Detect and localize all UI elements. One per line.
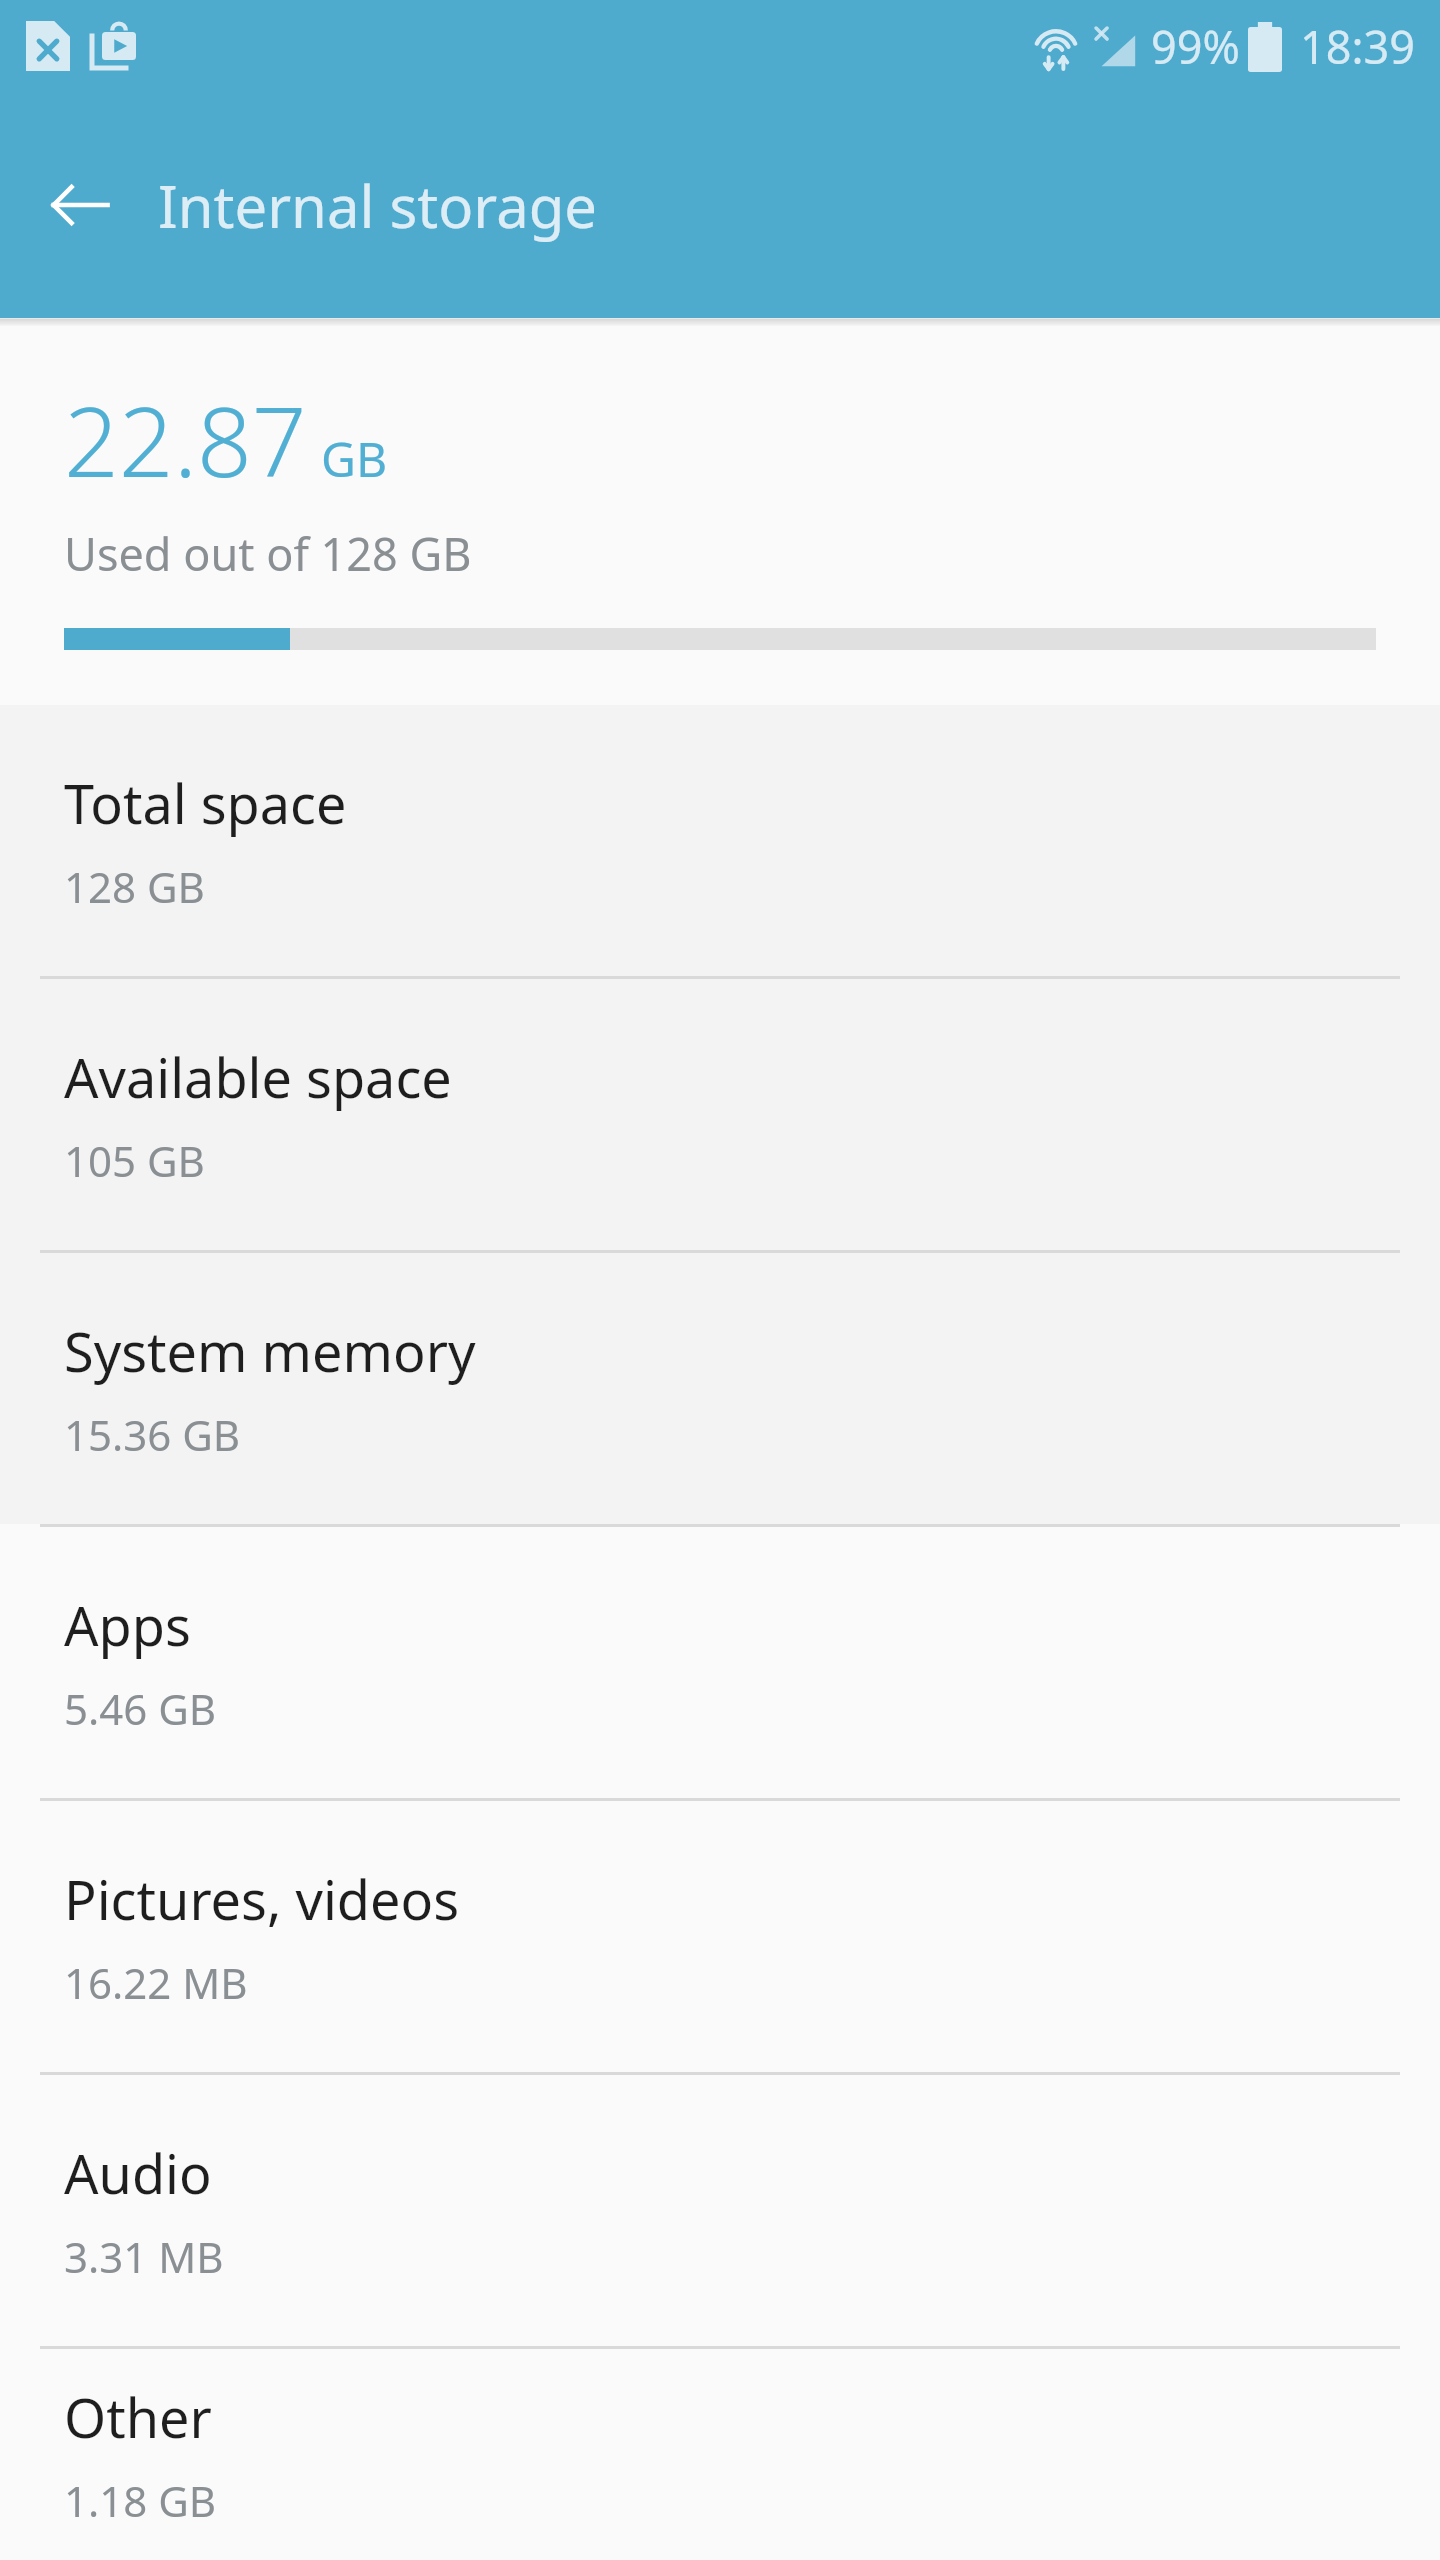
staticText: 1.18 GB xyxy=(64,2472,217,2529)
staticText: Available space xyxy=(64,1040,452,1114)
staticText: 105 GB xyxy=(64,1132,205,1189)
staticText: Other xyxy=(64,2380,212,2454)
staticText: 22.87 xyxy=(64,374,307,505)
staticText: Internal storage xyxy=(158,166,598,245)
button[interactable]: Pictures, videos xyxy=(0,1801,1440,2072)
button[interactable]: Other xyxy=(0,2349,1440,2560)
button[interactable]: Audio xyxy=(0,2075,1440,2346)
staticText: Used out of 128 GB xyxy=(64,523,472,584)
button[interactable]: System memory xyxy=(0,1253,1440,1524)
staticText: 18:39 xyxy=(1300,16,1416,77)
staticText: 5.46 GB xyxy=(64,1680,217,1737)
staticText: 99% xyxy=(1151,16,1240,77)
staticText: Apps xyxy=(64,1588,191,1662)
staticText: 128 GB xyxy=(64,858,205,915)
button[interactable]: Available space xyxy=(0,979,1440,1250)
staticText: Audio xyxy=(64,2136,212,2210)
staticText: System memory xyxy=(64,1314,476,1388)
staticText: Total space xyxy=(64,766,347,840)
staticText: Pictures, videos xyxy=(64,1862,460,1936)
button[interactable]: Apps xyxy=(0,1527,1440,1798)
staticText: GB xyxy=(321,426,388,491)
staticText: 16.22 MB xyxy=(64,1954,248,2011)
button[interactable]: Total space xyxy=(0,705,1440,976)
staticText: 15.36 GB xyxy=(64,1406,241,1463)
button[interactable]: Navigate up xyxy=(26,151,134,259)
staticText: 3.31 MB xyxy=(64,2228,224,2285)
